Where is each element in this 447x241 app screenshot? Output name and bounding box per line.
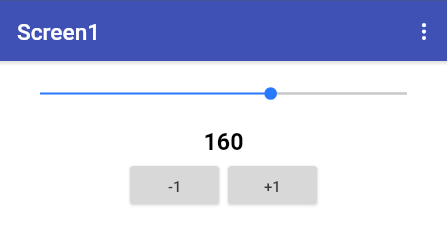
staticText: Screen1 xyxy=(17,19,101,46)
button[interactable]: -1 xyxy=(130,166,219,204)
staticText: 160 xyxy=(0,128,447,155)
button[interactable]: Value slider xyxy=(0,82,447,104)
button[interactable]: +1 xyxy=(228,166,317,204)
staticText: +1 xyxy=(264,178,281,196)
staticText: -1 xyxy=(168,178,182,196)
button[interactable]: More options xyxy=(402,9,446,53)
